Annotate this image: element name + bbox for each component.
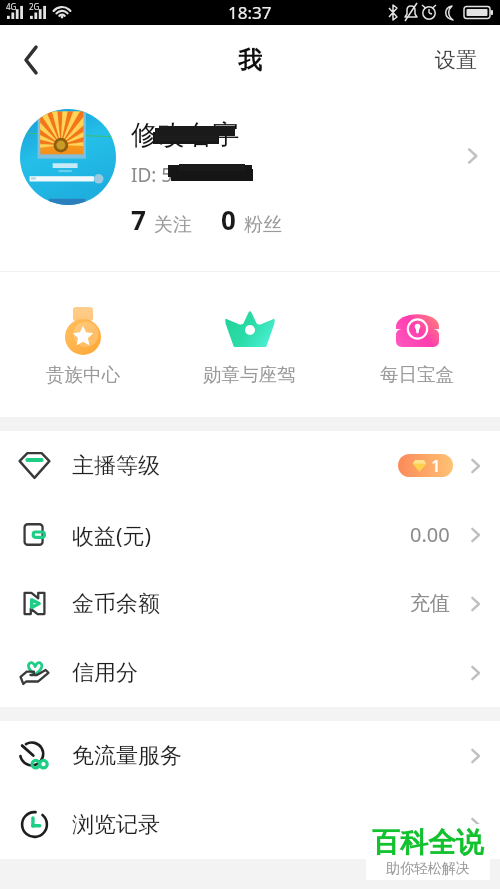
- button[interactable]: 主播等级: [0, 431, 500, 500]
- staticText: 助你轻松解决: [386, 860, 470, 878]
- staticText: 贵族中心: [46, 363, 120, 386]
- staticText: 百科全说: [372, 825, 484, 860]
- staticText: 收益(元): [72, 520, 152, 550]
- staticText: 信用分: [72, 659, 138, 687]
- staticText: 充值: [410, 591, 450, 616]
- button[interactable]: 每日宝盒: [333, 304, 500, 386]
- staticText: 18:37: [228, 1, 272, 24]
- staticText: 每日宝盒: [380, 363, 454, 386]
- button[interactable]: 收益(元): [0, 500, 500, 569]
- staticText: 设置: [435, 47, 477, 73]
- staticText: 2G: [29, 1, 40, 12]
- staticText: 我: [238, 45, 262, 75]
- staticText: 勋章与座驾: [203, 363, 296, 386]
- staticText: 金币余额: [72, 590, 160, 618]
- staticText: 关注: [154, 213, 192, 237]
- button[interactable]: 勋章与座驾: [166, 304, 333, 386]
- staticText: 7: [131, 202, 146, 237]
- staticText: 4G: [6, 1, 17, 12]
- staticText: 0: [221, 202, 236, 237]
- button[interactable]: 修改名字: [0, 94, 500, 271]
- staticText: 浏览记录: [72, 811, 160, 839]
- staticText: 主播等级: [72, 452, 160, 480]
- staticText: 粉丝: [244, 213, 282, 237]
- button[interactable]: 设置: [412, 35, 500, 85]
- staticText: 修改名字: [131, 118, 239, 152]
- button[interactable]: 金币余额: [0, 569, 500, 638]
- staticText: 免流量服务: [72, 742, 182, 770]
- button[interactable]: 浏览记录: [0, 790, 500, 859]
- staticText: ID: 5: [131, 162, 173, 188]
- button[interactable]: 贵族中心: [0, 304, 166, 386]
- staticText: 1: [431, 454, 441, 477]
- button[interactable]: 信用分: [0, 638, 500, 707]
- button[interactable]: Back: [0, 29, 61, 90]
- staticText: 0.00: [410, 521, 450, 548]
- button[interactable]: 免流量服务: [0, 721, 500, 790]
